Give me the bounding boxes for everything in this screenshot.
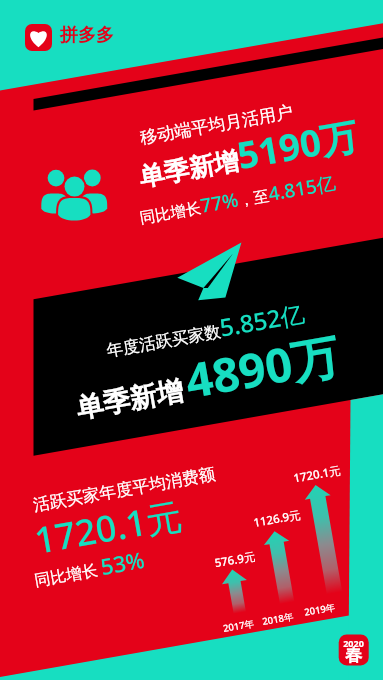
other: Pinduoduo 2020 Q1 results infographic	[0, 0, 383, 680]
